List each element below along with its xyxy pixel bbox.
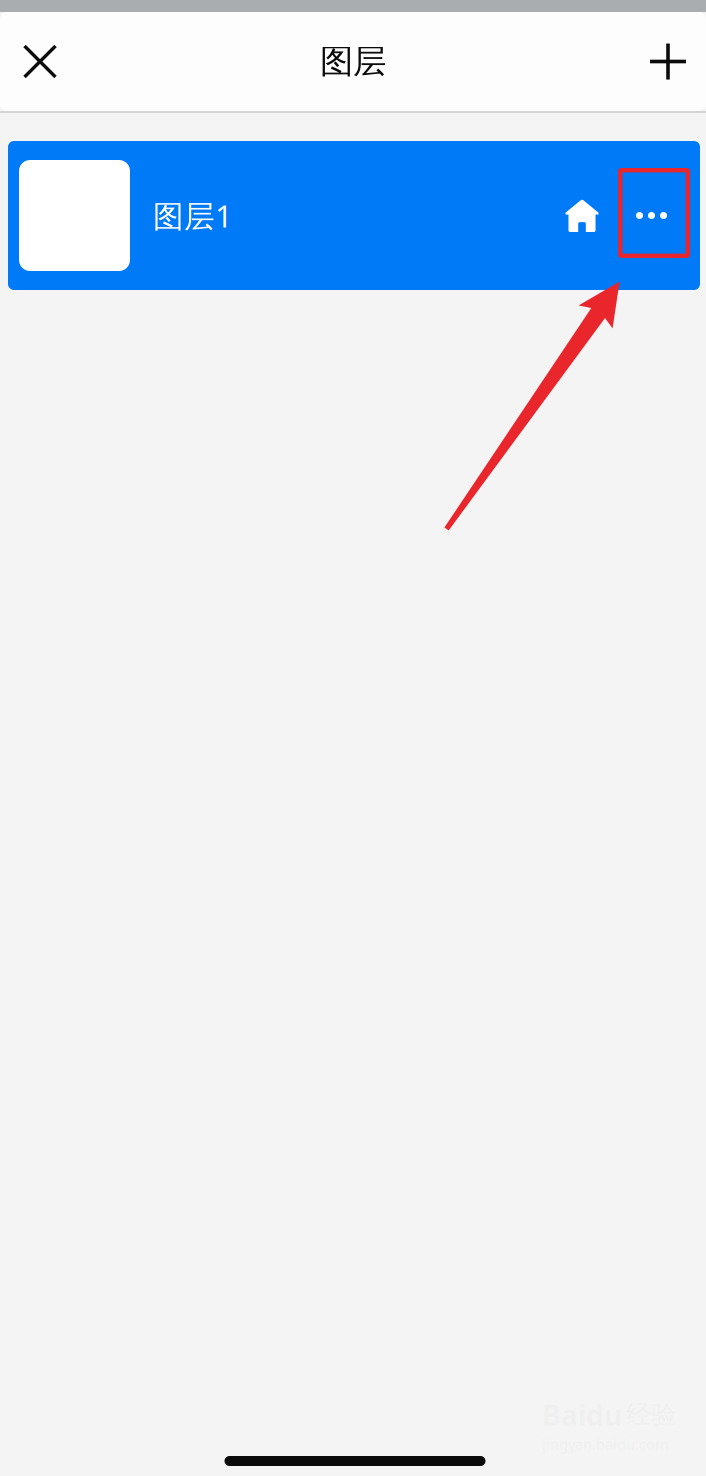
button[interactable]: Layer options [616, 141, 687, 290]
staticText: 图层 [320, 41, 386, 82]
button[interactable]: Close [0, 12, 80, 111]
button[interactable]: Add layer [630, 12, 706, 111]
button[interactable]: Move layer home [548, 141, 616, 290]
staticText: 图层1 [153, 195, 233, 236]
button[interactable]: 图层1 [8, 141, 700, 290]
